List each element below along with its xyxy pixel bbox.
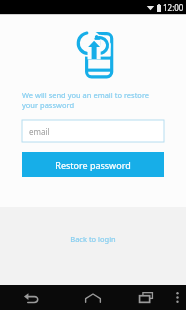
button[interactable]: email [22,120,164,142]
staticText: email [29,126,50,137]
staticText: Restore password [55,159,131,171]
staticText: Back to login [70,234,116,244]
button[interactable]: Back to login [62,231,124,247]
button[interactable]: Back [0,285,62,310]
button[interactable]: Restore password [22,152,164,177]
button[interactable]: Home [62,285,124,310]
button[interactable]: More options [168,285,186,310]
button[interactable]: Recent apps [124,285,168,310]
staticText: 12:00 [163,2,184,13]
staticText: We will send you an email to restore you… [22,90,164,110]
